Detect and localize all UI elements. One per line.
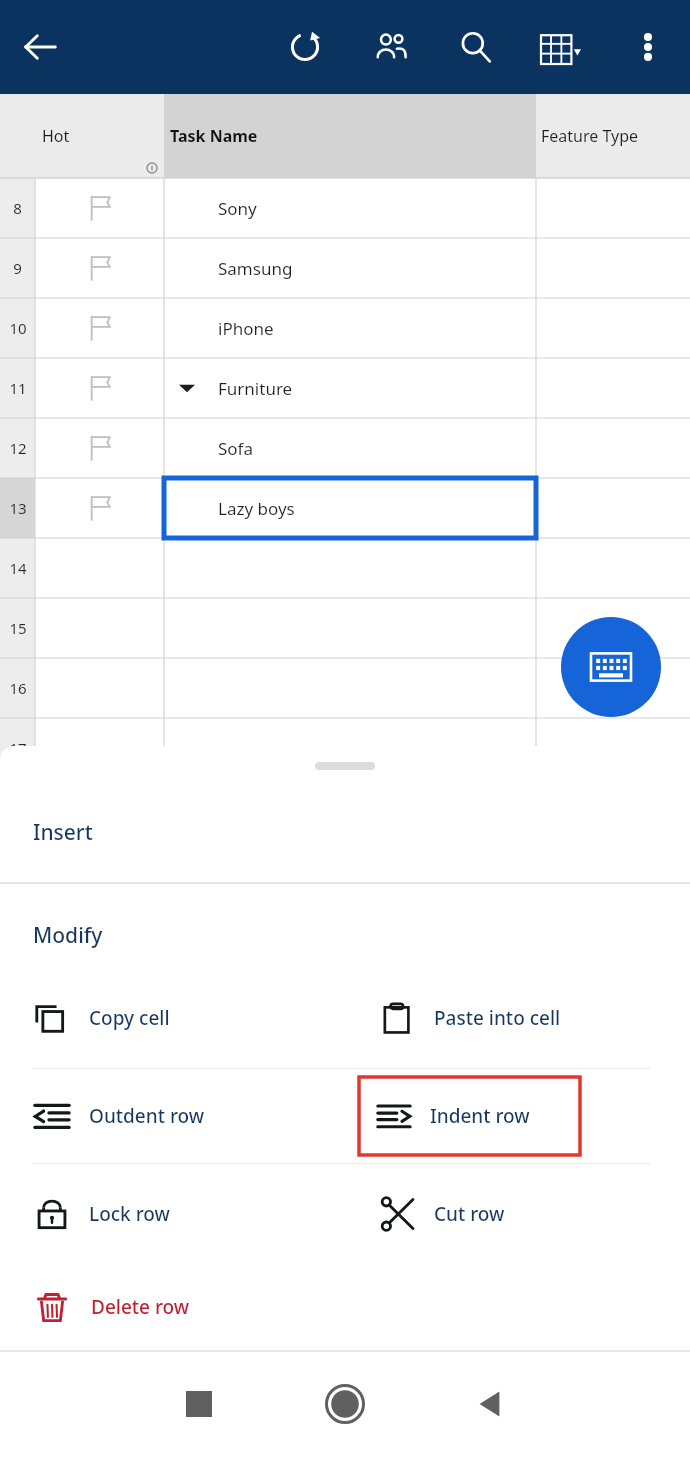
button[interactable]: Home — [310, 1369, 380, 1439]
staticText: Insert — [33, 818, 93, 847]
staticText: Furniture — [218, 377, 293, 400]
button[interactable]: Paste into cell — [378, 990, 561, 1046]
button[interactable]: Hot — [35, 94, 164, 178]
button[interactable]: Indent row — [359, 1077, 580, 1155]
button[interactable]: Lock row — [33, 1186, 170, 1242]
staticText: Lazy boys — [218, 497, 295, 520]
staticText: Outdent row — [89, 1103, 205, 1129]
staticText: Modify — [33, 921, 103, 950]
staticText: 9 — [13, 258, 22, 278]
button[interactable]: Cut row — [378, 1186, 505, 1242]
staticText: 14 — [9, 558, 27, 578]
button[interactable]: 9 — [0, 238, 690, 298]
staticText: 13 — [9, 498, 27, 518]
button[interactable]: 16 — [0, 658, 690, 718]
button[interactable]: Outdent row — [33, 1077, 205, 1155]
staticText: Sofa — [218, 437, 254, 460]
button[interactable]: Recent apps — [164, 1369, 234, 1439]
staticText: 17 — [9, 738, 27, 758]
button[interactable]: Back — [456, 1369, 526, 1439]
staticText: Samsung — [218, 257, 293, 280]
button[interactable]: Grid view — [530, 19, 592, 81]
staticText: Sony — [218, 197, 257, 220]
button[interactable]: Task Name — [164, 94, 536, 178]
button[interactable]: Collaborators — [362, 19, 418, 75]
staticText: Cut row — [434, 1201, 505, 1227]
staticText: Task Name — [170, 125, 258, 147]
staticText: 16 — [9, 678, 27, 698]
button[interactable]: Feature Type — [536, 94, 690, 178]
button[interactable]: 8 — [0, 178, 690, 238]
staticText: Delete row — [91, 1294, 190, 1320]
staticText: iPhone — [218, 317, 274, 340]
button[interactable]: Lazy boys — [164, 478, 536, 538]
button[interactable]: Delete row — [33, 1282, 190, 1332]
button[interactable]: 17 — [0, 718, 690, 778]
button[interactable]: Search — [448, 19, 504, 75]
staticText: Feature Type — [541, 125, 639, 147]
button[interactable]: 10 — [0, 298, 690, 358]
staticText: 11 — [9, 378, 27, 398]
button[interactable]: Insert — [0, 806, 690, 858]
button[interactable]: 11 — [0, 358, 690, 418]
button[interactable]: 13 — [0, 478, 690, 538]
staticText: Lazy boys — [218, 497, 295, 520]
button[interactable]: Back — [12, 19, 68, 75]
button[interactable]: Open keyboard — [561, 617, 661, 717]
button[interactable]: Refresh — [277, 19, 333, 75]
staticText: Lock row — [89, 1201, 170, 1227]
staticText: Copy cell — [89, 1005, 170, 1031]
button[interactable]: More options — [620, 19, 676, 75]
staticText: 15 — [9, 618, 27, 638]
staticText: Indent row — [430, 1103, 530, 1129]
button[interactable]: 12 — [0, 418, 690, 478]
button[interactable]: 15 — [0, 598, 690, 658]
staticText: 10 — [9, 318, 27, 338]
staticText: 8 — [13, 198, 22, 218]
staticText: Hot — [42, 125, 70, 147]
button[interactable]: Copy cell — [33, 990, 170, 1046]
staticText: 12 — [9, 438, 27, 458]
staticText: Paste into cell — [434, 1005, 561, 1031]
button[interactable]: 14 — [0, 538, 690, 598]
